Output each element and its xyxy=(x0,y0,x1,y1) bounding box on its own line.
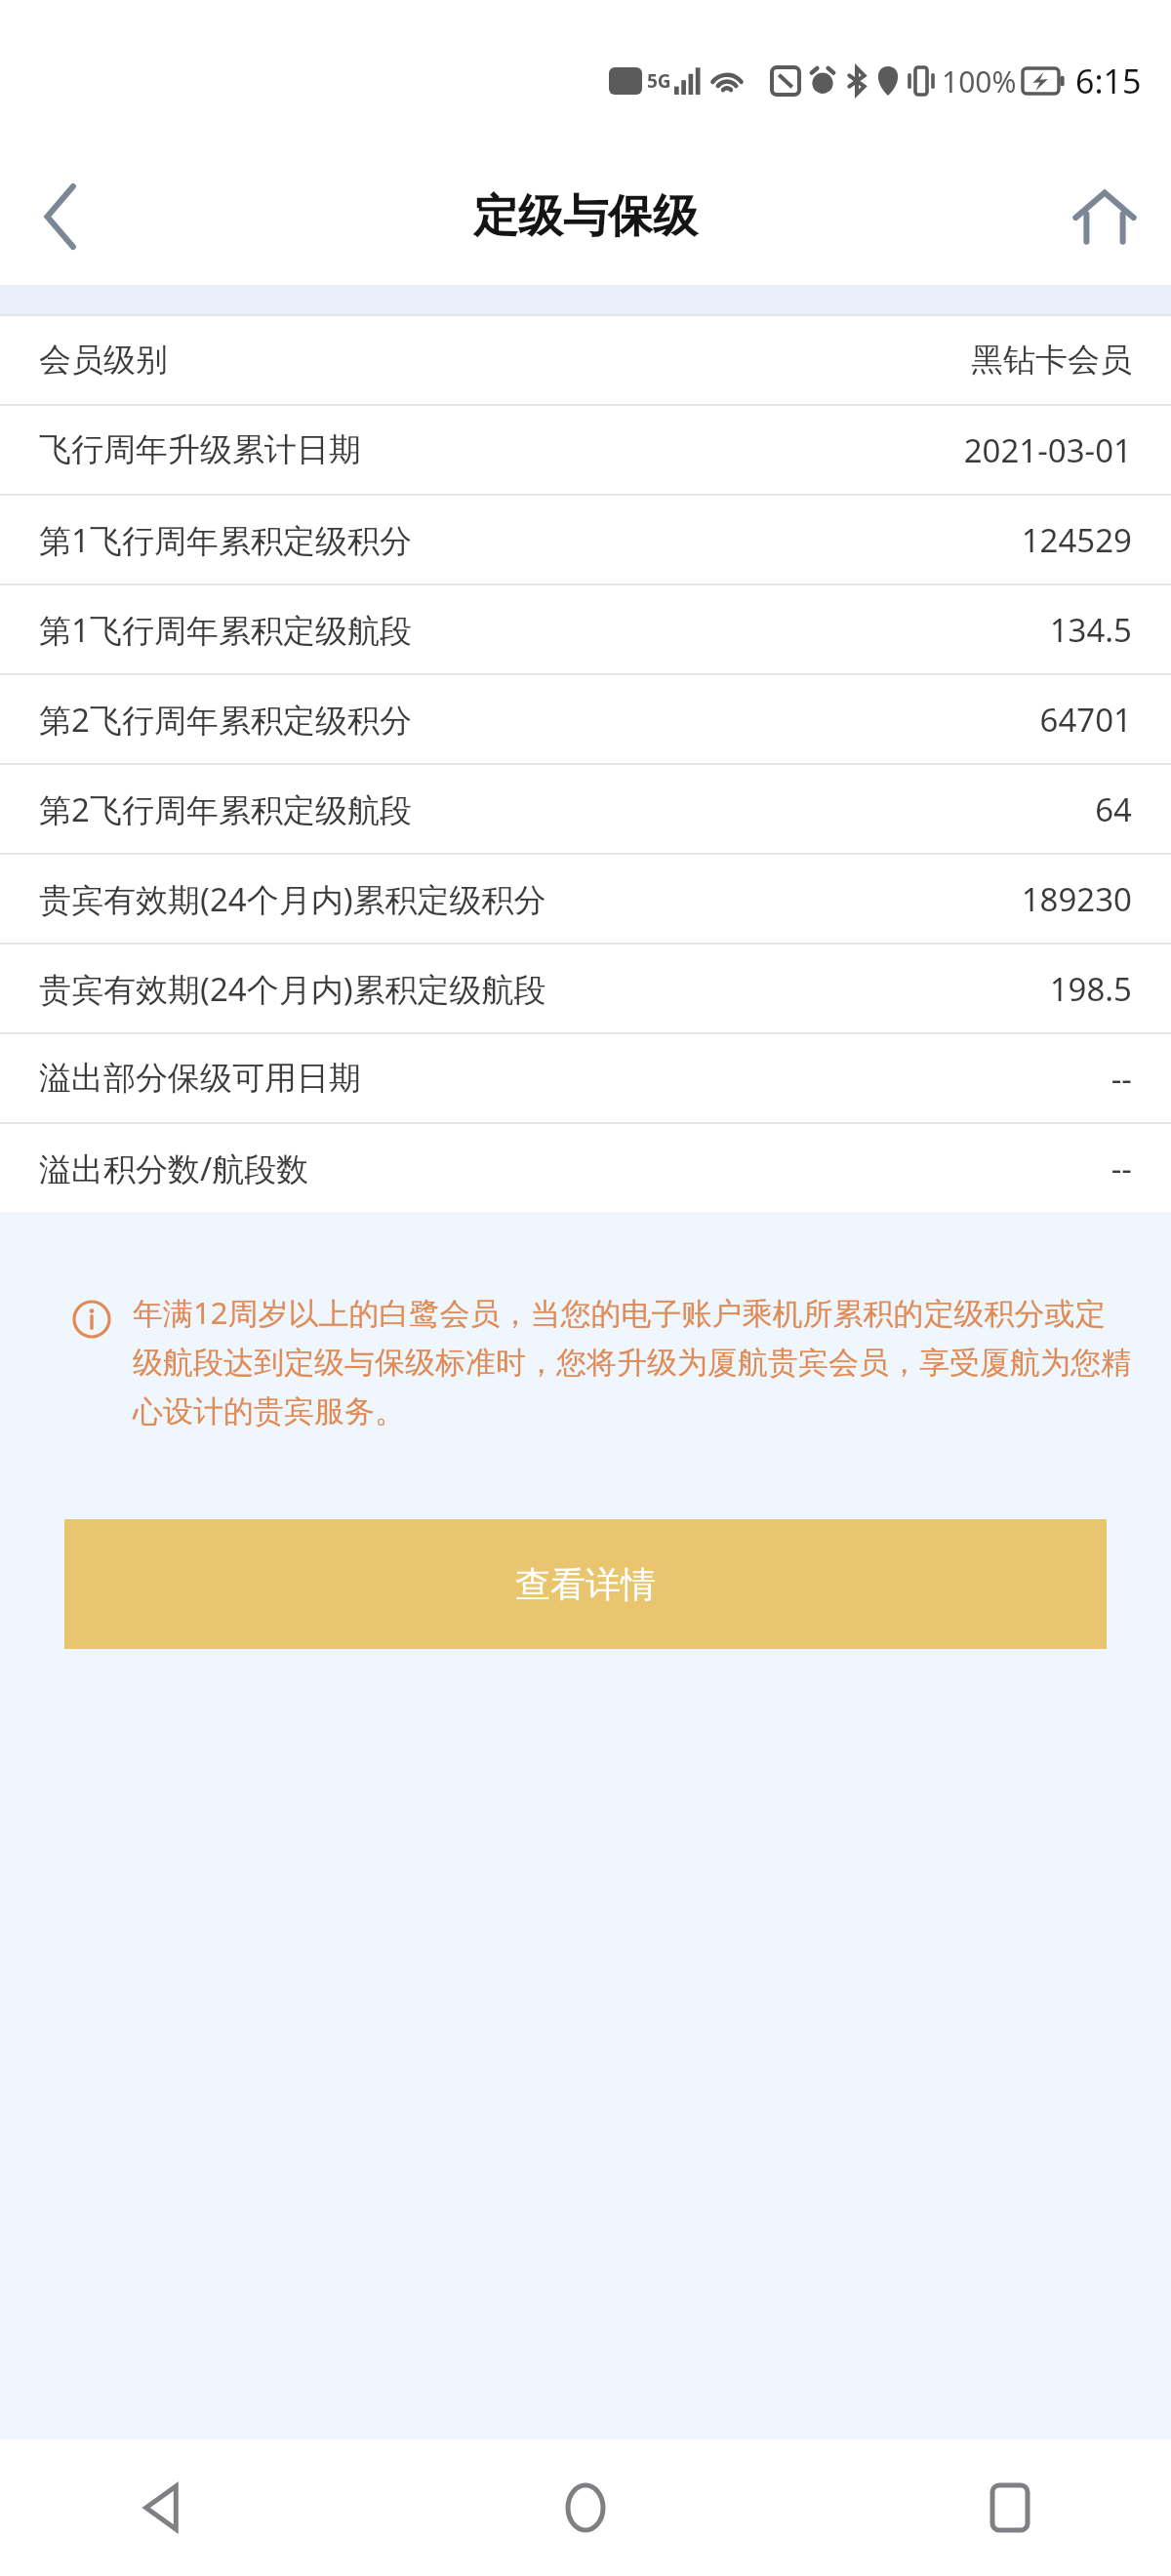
button[interactable]: 会员级别 xyxy=(0,316,1171,404)
staticText: 64 xyxy=(1095,787,1132,831)
staticText: 134.5 xyxy=(1049,608,1132,652)
staticText: 飞行周年升级累计日期 xyxy=(39,429,963,470)
staticText: 贵宾有效期(24个月内)累积定级积分 xyxy=(39,877,1021,921)
staticText: 第1飞行周年累积定级积分 xyxy=(39,518,1021,562)
staticText: 第2飞行周年累积定级航段 xyxy=(39,787,1095,831)
button[interactable]: 第2飞行周年累积定级航段 xyxy=(0,765,1171,853)
button[interactable]: Back xyxy=(107,2454,215,2561)
button[interactable]: 溢出积分数/航段数 xyxy=(0,1124,1171,1212)
staticText: 溢出积分数/航段数 xyxy=(39,1147,1110,1190)
button[interactable]: Recent apps xyxy=(956,2454,1064,2561)
staticText: 5G xyxy=(647,68,671,94)
button[interactable]: 飞行周年升级累计日期 xyxy=(0,406,1171,494)
button[interactable]: Back xyxy=(14,170,107,263)
button[interactable]: 第1飞行周年累积定级航段 xyxy=(0,585,1171,673)
button[interactable]: 溢出部分保级可用日期 xyxy=(0,1034,1171,1122)
staticText: 会员级别 xyxy=(39,340,971,381)
staticText: -- xyxy=(1110,1057,1132,1101)
staticText: 黑钻卡会员 xyxy=(971,340,1132,381)
staticText: 定级与保级 xyxy=(473,188,698,245)
staticText: 189230 xyxy=(1021,877,1132,921)
staticText: 64701 xyxy=(1039,698,1132,742)
staticText: 年满12周岁以上的白鹭会员，当您的电子账户乘机所累积的定级积分或定级航段达到定级… xyxy=(133,1292,1132,1431)
staticText: 溢出部分保级可用日期 xyxy=(39,1058,1110,1099)
staticText: 124529 xyxy=(1021,518,1132,562)
button[interactable]: 查看详情 xyxy=(64,1519,1107,1649)
staticText: 贵宾有效期(24个月内)累积定级航段 xyxy=(39,967,1049,1011)
staticText: 198.5 xyxy=(1049,967,1132,1011)
button[interactable]: Home xyxy=(532,2454,639,2561)
staticText: 6:15 xyxy=(1075,59,1142,103)
staticText: 第2飞行周年累积定级积分 xyxy=(39,698,1039,742)
button[interactable]: 第1飞行周年累积定级积分 xyxy=(0,496,1171,584)
button[interactable]: 第2飞行周年累积定级积分 xyxy=(0,675,1171,763)
button[interactable]: 贵宾有效期(24个月内)累积定级积分 xyxy=(0,855,1171,943)
staticText: 第1飞行周年累积定级航段 xyxy=(39,608,1049,652)
staticText: 查看详情 xyxy=(515,1562,656,1606)
button[interactable]: Home xyxy=(1058,170,1151,263)
staticText: 2021-03-01 xyxy=(963,428,1132,472)
staticText: -- xyxy=(1110,1147,1132,1190)
staticText: 100% xyxy=(942,61,1017,101)
button[interactable]: 贵宾有效期(24个月内)累积定级航段 xyxy=(0,945,1171,1032)
